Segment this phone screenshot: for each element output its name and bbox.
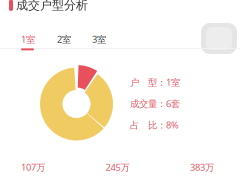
staticText: 成交量：6套 xyxy=(130,97,180,110)
staticText: 占 比：8% xyxy=(130,119,179,131)
staticText: 户 型：1室 xyxy=(130,76,180,88)
button[interactable]: 1室 xyxy=(21,33,35,50)
button[interactable]: 2室 xyxy=(57,33,71,45)
staticText: 245万 xyxy=(105,161,129,173)
staticText: 1室 xyxy=(21,33,35,45)
staticText: 2室 xyxy=(57,33,71,45)
staticText: 383万 xyxy=(190,161,214,173)
staticText: 3室 xyxy=(92,33,106,45)
button[interactable]: More xyxy=(201,23,237,54)
button[interactable]: 3室 xyxy=(92,33,106,45)
staticText: 成交户型分析 xyxy=(16,0,88,13)
staticText: 107万 xyxy=(21,161,45,173)
